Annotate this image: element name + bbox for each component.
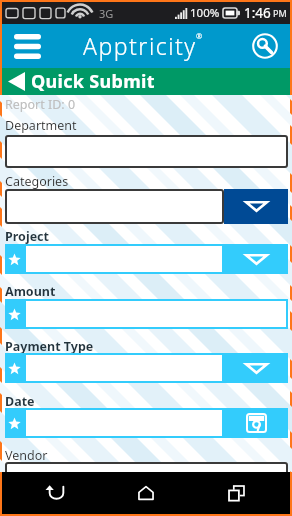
button[interactable] bbox=[5, 462, 288, 495]
staticText: ® bbox=[196, 31, 203, 41]
staticText: 1:46 bbox=[244, 4, 271, 22]
button[interactable]: Recent apps bbox=[200, 472, 272, 514]
staticText: 3G bbox=[99, 6, 114, 21]
button[interactable] bbox=[5, 299, 288, 329]
staticText: Project bbox=[5, 228, 49, 245]
staticText: Quick Submit bbox=[31, 69, 155, 94]
button[interactable] bbox=[5, 408, 288, 438]
staticText: Payment Type bbox=[5, 338, 94, 355]
staticText: Categories bbox=[5, 173, 69, 190]
button[interactable] bbox=[5, 189, 224, 224]
staticText: Amount bbox=[5, 283, 56, 300]
staticText: Report ID: 0 bbox=[5, 96, 76, 113]
staticText: 100% bbox=[190, 5, 220, 21]
button[interactable] bbox=[5, 353, 288, 383]
staticText: Apptricity bbox=[83, 30, 197, 61]
button[interactable] bbox=[5, 244, 288, 274]
staticText: Date bbox=[5, 393, 35, 410]
staticText: Department bbox=[5, 117, 77, 134]
button[interactable]: Menu bbox=[7, 24, 47, 68]
staticText: PM bbox=[273, 7, 287, 19]
button[interactable] bbox=[5, 135, 288, 168]
staticText: Vendor bbox=[5, 447, 48, 464]
button[interactable]: Back bbox=[20, 472, 92, 514]
button[interactable]: Search bbox=[250, 31, 280, 61]
button[interactable]: Quick Submit bbox=[2, 68, 290, 95]
button[interactable]: Select category bbox=[224, 189, 288, 224]
button[interactable]: Home bbox=[110, 472, 182, 514]
